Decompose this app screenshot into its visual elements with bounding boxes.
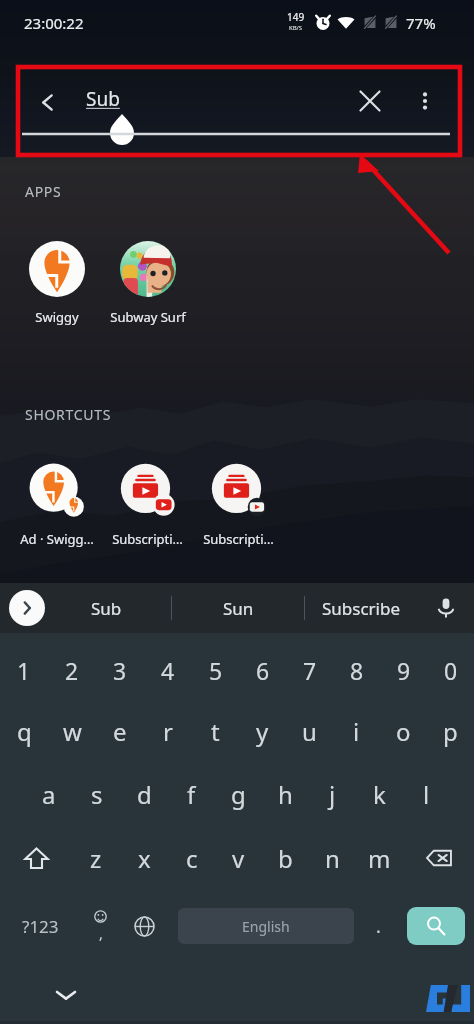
staticText: Ad · Swigg… [20,530,94,548]
button[interactable]: r [144,707,192,755]
button[interactable]: ?123 [0,900,80,952]
button[interactable]: Ad · Swigg… [11,463,102,548]
button[interactable]: h [262,770,309,818]
button[interactable]: Emoji [78,900,122,952]
button[interactable]: k [356,770,403,818]
staticText: , [99,924,103,943]
staticText: Swiggy [35,308,79,326]
staticText: 149 [287,10,305,24]
staticText: APPS [25,182,62,201]
button[interactable]: z [72,834,120,882]
button[interactable]: Subscripti… [102,463,193,548]
button[interactable]: Sun [193,583,283,633]
button[interactable]: Backspace [403,834,474,882]
staticText: j [329,778,336,811]
button[interactable]: 6 [239,646,286,694]
button[interactable]: c [168,834,215,882]
button[interactable]: . [356,900,400,952]
staticText: z [90,842,102,875]
button[interactable]: Swiggy [11,241,102,326]
button[interactable]: f [168,770,215,818]
button[interactable]: b [262,834,309,882]
staticText: i [353,715,360,748]
button[interactable]: i [333,707,380,755]
staticText: a [42,778,56,811]
staticText: s [91,778,103,811]
button[interactable]: Shift [0,834,72,882]
staticText: q [17,715,32,748]
staticText: g [231,778,246,811]
button[interactable]: More options [402,78,448,124]
button[interactable]: Subscribe [311,583,411,633]
button[interactable]: Hide keyboard [44,973,88,1017]
staticText: n [325,842,340,875]
button[interactable]: Search [407,907,465,945]
staticText: 1 [17,655,31,686]
button[interactable]: Change language [122,900,166,952]
button[interactable]: 8 [333,646,380,694]
button[interactable]: Expand suggestions [9,590,45,626]
button[interactable]: 7 [286,646,333,694]
staticText: SHORTCUTS [25,405,112,424]
staticText: m [368,842,391,875]
button[interactable]: Clear [347,78,393,124]
staticText: KB/S [289,24,303,32]
staticText: 3 [113,655,127,686]
staticText: 77% [406,13,436,33]
button[interactable]: 0 [427,646,474,694]
staticText: x [138,842,151,875]
button[interactable]: g [215,770,262,818]
staticText: 9 [397,655,411,686]
staticText: . [376,914,381,939]
button[interactable]: u [286,707,333,755]
button[interactable]: Voice input [424,586,468,630]
staticText: 8 [350,655,364,686]
staticText: Sub [91,597,122,620]
staticText: y [256,715,269,748]
button[interactable]: Subway Surf [102,241,193,326]
staticText: 5 [209,655,223,686]
button[interactable]: Sub [61,583,151,633]
button[interactable]: j [309,770,356,818]
staticText: w [63,715,82,748]
button[interactable]: 3 [96,646,144,694]
button[interactable]: y [239,707,286,755]
staticText: d [137,778,152,811]
staticText: p [443,715,458,748]
button[interactable]: s [73,770,121,818]
staticText: Subscripti… [112,530,183,548]
button[interactable]: 2 [48,646,96,694]
staticText: Sun [223,597,254,620]
button[interactable]: e [96,707,144,755]
staticText: 7 [303,655,317,686]
button[interactable]: q [0,707,48,755]
button[interactable]: 5 [192,646,239,694]
button[interactable]: 4 [144,646,192,694]
staticText: f [187,778,196,811]
button[interactable]: a [25,770,73,818]
staticText: k [373,778,386,811]
staticText: Subscribe [322,597,401,620]
button[interactable]: English [178,908,354,944]
button[interactable]: w [48,707,96,755]
button[interactable]: 9 [380,646,427,694]
button[interactable]: 1 [0,646,48,694]
staticText: 2 [65,655,79,686]
button[interactable]: t [192,707,239,755]
button[interactable]: x [120,834,168,882]
button[interactable]: p [427,707,474,755]
staticText: ?123 [22,915,59,938]
button[interactable]: l [403,770,450,818]
button[interactable]: v [215,834,262,882]
button[interactable]: d [121,770,168,818]
button[interactable]: n [309,834,356,882]
staticText: Subway Surf [110,308,186,326]
button[interactable]: m [356,834,403,882]
staticText: Sub [86,86,120,112]
staticText: v [232,842,245,875]
staticText: h [278,778,293,811]
staticText: e [113,715,127,748]
button[interactable]: o [380,707,427,755]
button[interactable]: Subscripti… [193,463,284,548]
button[interactable]: Back [24,79,70,125]
